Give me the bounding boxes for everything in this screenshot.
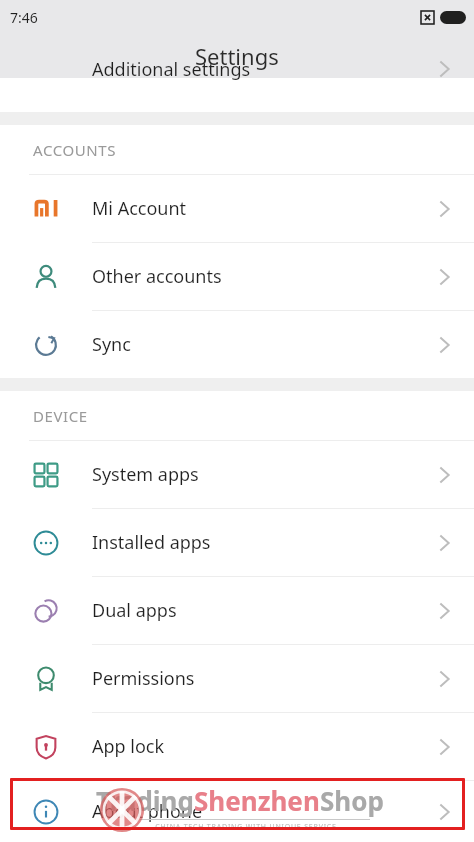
- staticText: Settings: [195, 41, 279, 71]
- staticText: Shop: [320, 783, 384, 818]
- staticText: Other accounts: [92, 264, 439, 289]
- staticText: CHINA TECH TRADING WITH UNIQUE SERVICE: [96, 822, 396, 832]
- staticText: Shenzhen: [194, 783, 320, 818]
- button[interactable]: System apps: [0, 441, 474, 508]
- staticText: Mi Account: [92, 196, 439, 221]
- staticText: Trading: [96, 783, 194, 818]
- staticText: System apps: [92, 462, 439, 487]
- staticText: DEVICE: [33, 406, 88, 426]
- staticText: Permissions: [92, 666, 439, 691]
- staticText: 7:46: [10, 8, 38, 27]
- staticText: Installed apps: [92, 530, 439, 555]
- staticText: App lock: [92, 734, 439, 759]
- staticText: Sync: [92, 332, 439, 357]
- button[interactable]: Other accounts: [0, 243, 474, 310]
- button[interactable]: Mi Account: [0, 175, 474, 242]
- staticText: About phone: [92, 799, 439, 824]
- button[interactable]: Sync: [0, 311, 474, 378]
- button[interactable]: Dual apps: [0, 577, 474, 644]
- button[interactable]: App lock: [0, 713, 474, 780]
- staticText: Dual apps: [92, 598, 439, 623]
- staticText: ACCOUNTS: [33, 140, 117, 160]
- button[interactable]: Permissions: [0, 645, 474, 712]
- button[interactable]: Installed apps: [0, 509, 474, 576]
- button[interactable]: About phone: [0, 781, 474, 842]
- staticText: Additional settings: [92, 57, 251, 82]
